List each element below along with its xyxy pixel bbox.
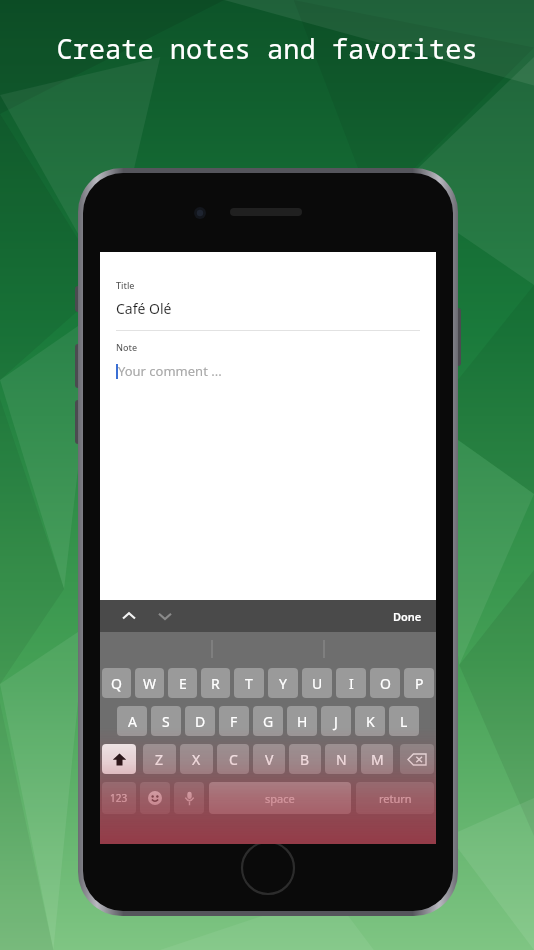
staticText: B [300,750,310,769]
staticText: G [263,712,274,731]
staticText: D [195,712,206,731]
staticText: P [415,674,424,693]
button[interactable]: Emoji [140,782,170,814]
staticText: R [211,674,220,693]
staticText: space [265,791,295,806]
button[interactable]: N [325,744,357,774]
staticText: E [179,674,187,693]
button[interactable]: Your comment ... [116,362,420,380]
staticText: U [312,674,323,693]
button[interactable]: 123 [102,782,136,814]
button[interactable]: O [370,668,400,698]
button[interactable]: U [302,668,332,698]
button[interactable]: V [253,744,285,774]
button[interactable]: A [117,706,147,736]
button[interactable]: space [209,782,351,814]
button[interactable]: Café Olé [116,299,420,318]
button[interactable]: D [185,706,215,736]
staticText: Done [393,609,422,624]
staticText: H [297,712,308,731]
staticText: Note [116,341,138,353]
staticText: F [230,712,238,731]
button[interactable]: return [356,782,434,814]
staticText: C [229,750,238,769]
button[interactable]: H [287,706,317,736]
button[interactable]: Q [102,668,131,698]
staticText: S [162,712,170,731]
button[interactable]: T [234,668,264,698]
button[interactable]: R [201,668,230,698]
staticText: Title [116,279,135,291]
staticText: I [349,674,354,693]
button[interactable]: G [253,706,283,736]
staticText: return [379,791,412,806]
staticText: X [192,750,201,769]
staticText: M [371,750,384,769]
staticText: A [128,712,137,731]
button[interactable]: L [389,706,419,736]
button[interactable]: M [361,744,393,774]
staticText: N [336,750,347,769]
staticText: L [400,712,408,731]
button[interactable]: P [404,668,434,698]
button[interactable]: Backspace [400,744,434,774]
staticText: J [334,712,338,731]
staticText: Your comment ... [118,362,222,380]
staticText: O [380,674,391,693]
button[interactable]: Y [268,668,298,698]
button[interactable]: I [336,668,366,698]
button[interactable]: Next field [150,601,180,631]
staticText: W [143,674,157,693]
button[interactable]: Shift [102,744,136,774]
button[interactable]: S [151,706,181,736]
button[interactable]: F [219,706,249,736]
staticText: Z [155,750,164,769]
staticText: Y [279,674,287,693]
button[interactable]: Previous field [114,601,144,631]
staticText: 123 [110,791,128,805]
button[interactable]: Done [379,600,436,632]
button[interactable]: J [321,706,351,736]
button[interactable]: Dictation [174,782,204,814]
button[interactable]: X [180,744,213,774]
button[interactable]: C [217,744,249,774]
staticText: K [366,712,375,731]
staticText: Create notes and favorites [56,30,478,67]
button[interactable]: K [355,706,385,736]
staticText: V [265,750,274,769]
button[interactable]: Z [143,744,176,774]
button[interactable]: W [135,668,164,698]
staticText: T [245,674,253,693]
button[interactable]: B [289,744,321,774]
button[interactable]: E [168,668,197,698]
staticText: Café Olé [116,299,172,318]
staticText: Q [111,674,122,693]
